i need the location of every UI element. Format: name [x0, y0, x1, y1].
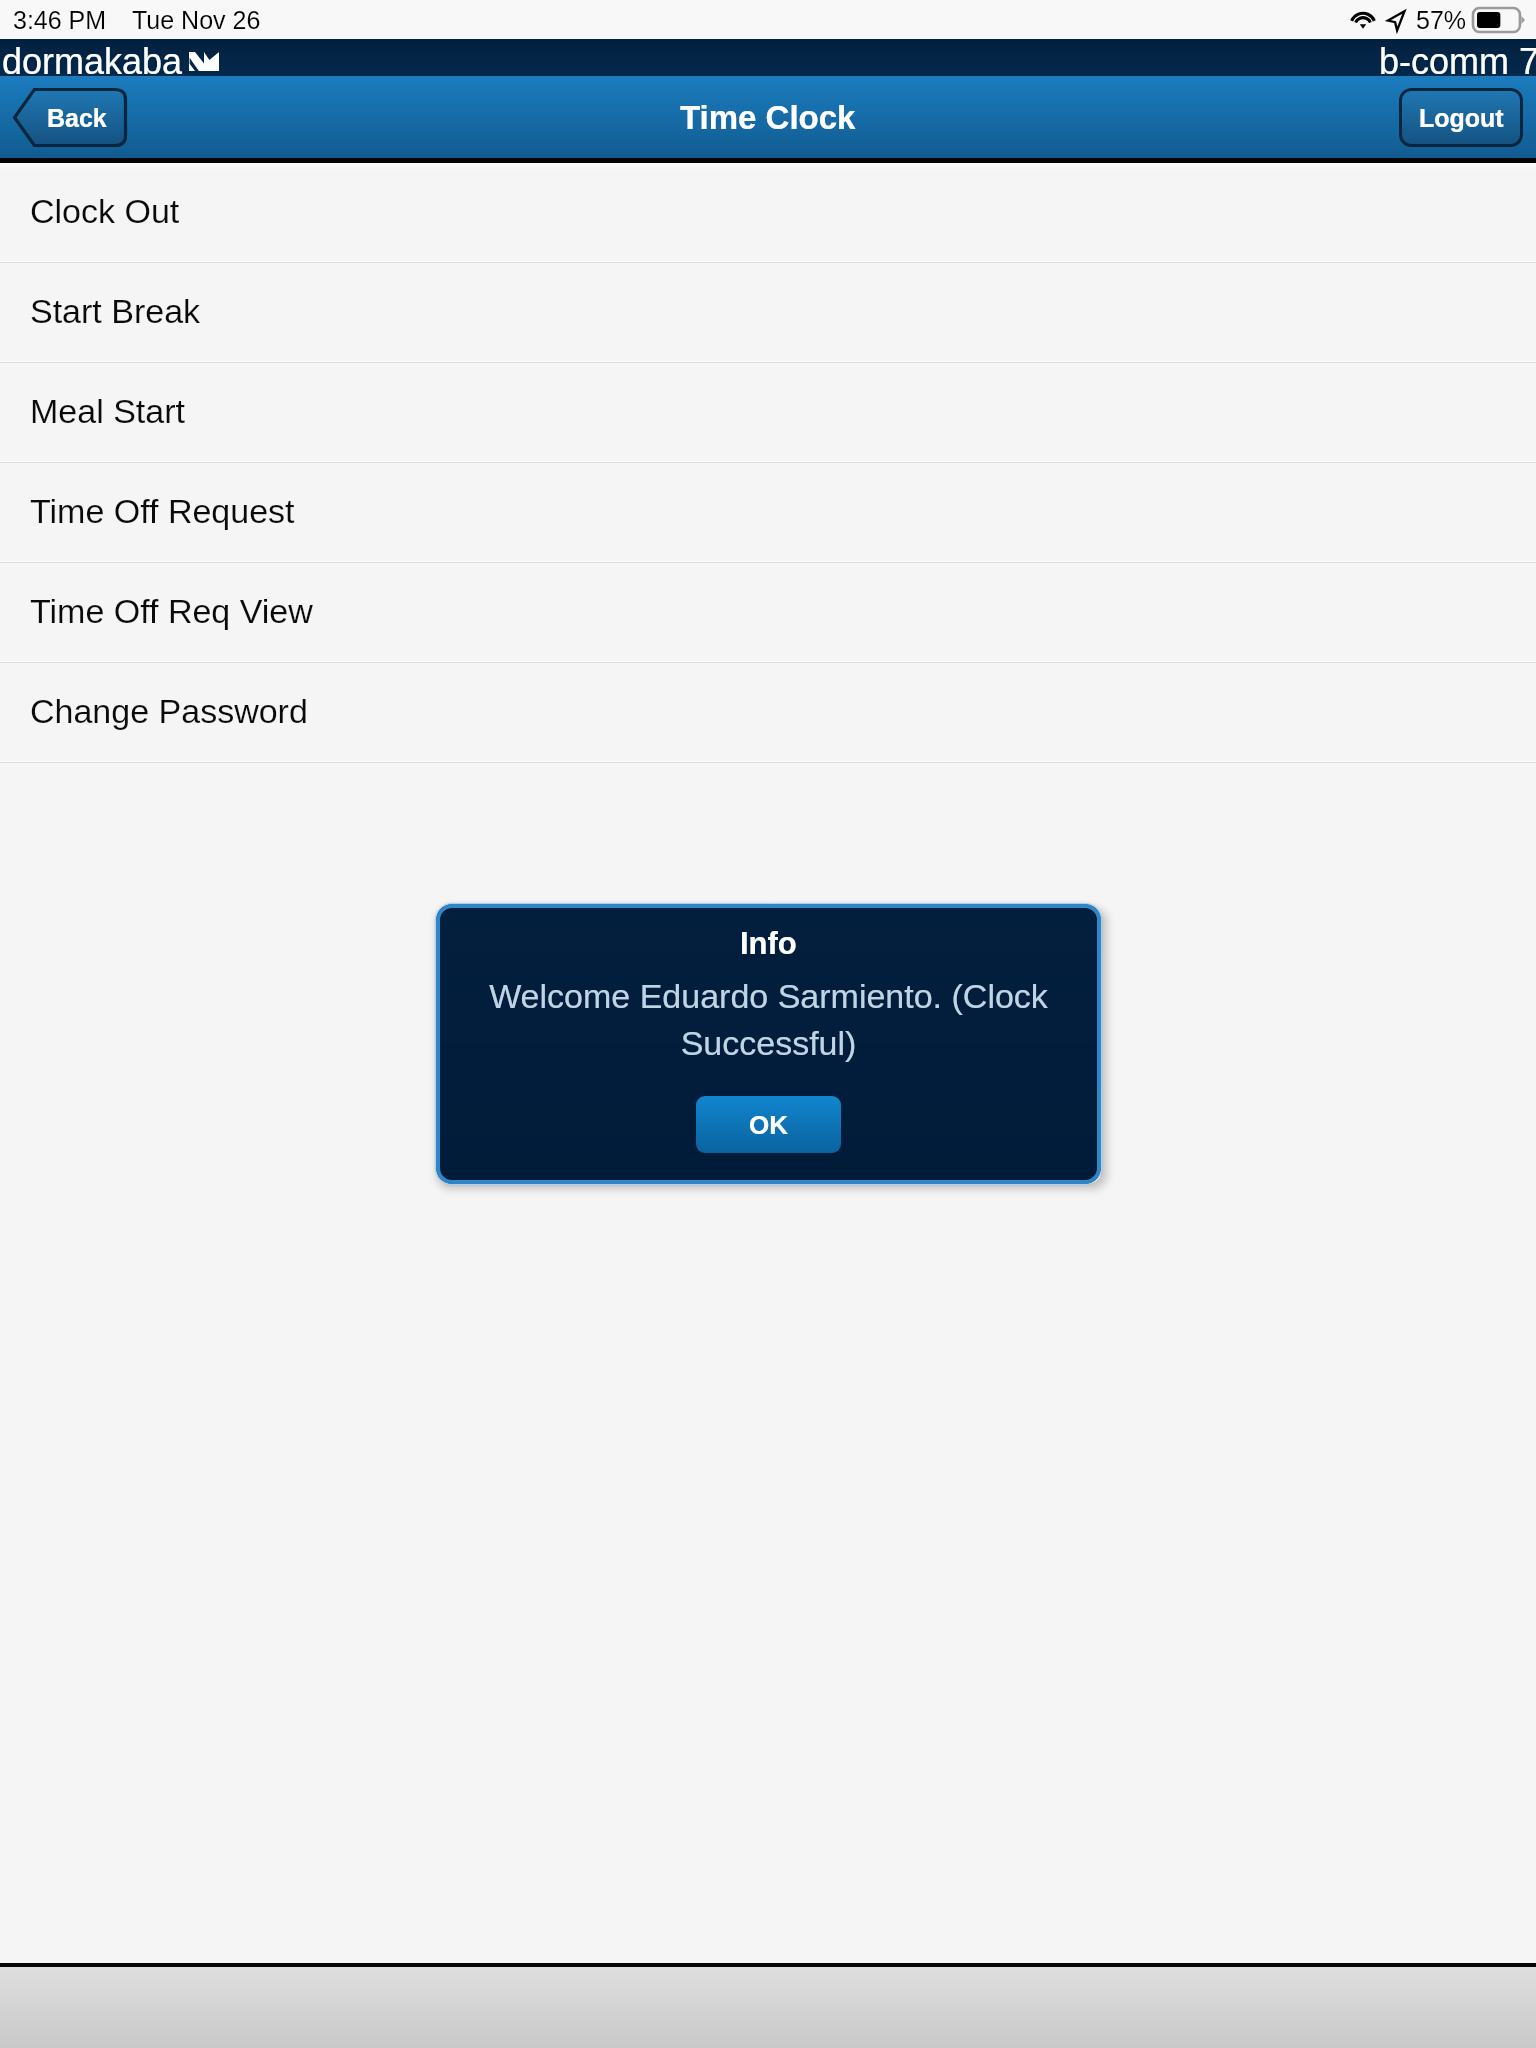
staticText: Tue Nov 26: [132, 6, 261, 34]
staticText: Time Off Req View: [30, 592, 313, 630]
staticText: Back: [47, 104, 107, 132]
button[interactable]: OK: [696, 1096, 841, 1153]
staticText: Meal Start: [30, 392, 185, 430]
button[interactable]: Back: [13, 88, 127, 147]
other: Wi-Fi: [1349, 10, 1377, 30]
button[interactable]: Time Off Req View: [0, 563, 1536, 663]
staticText: Info: [740, 926, 797, 961]
staticText: Logout: [1419, 104, 1504, 132]
button[interactable]: Time Off Request: [0, 463, 1536, 563]
button[interactable]: Start Break: [0, 263, 1536, 363]
staticText: 57%: [1416, 6, 1467, 34]
other: Battery 57 percent: [1473, 8, 1524, 32]
button[interactable]: Clock Out: [0, 163, 1536, 263]
other: Location: [1387, 10, 1405, 31]
staticText: Change Password: [30, 692, 308, 730]
staticText: Time Off Request: [30, 492, 295, 530]
staticText: Welcome Eduardo Sarmiento. (Clock Succes…: [473, 977, 1064, 1063]
staticText: 3:46 PM: [13, 6, 107, 34]
other: dormakaba logo: [189, 52, 219, 71]
button[interactable]: Meal Start: [0, 363, 1536, 463]
button[interactable]: Logout: [1399, 88, 1523, 147]
button[interactable]: Change Password: [0, 663, 1536, 763]
staticText: Start Break: [30, 292, 201, 330]
staticText: Time Clock: [680, 99, 856, 136]
staticText: OK: [749, 1110, 788, 1139]
staticText: Clock Out: [30, 192, 180, 230]
staticText: b-comm 7: [1379, 41, 1536, 78]
staticText: dormakaba: [2, 41, 183, 78]
